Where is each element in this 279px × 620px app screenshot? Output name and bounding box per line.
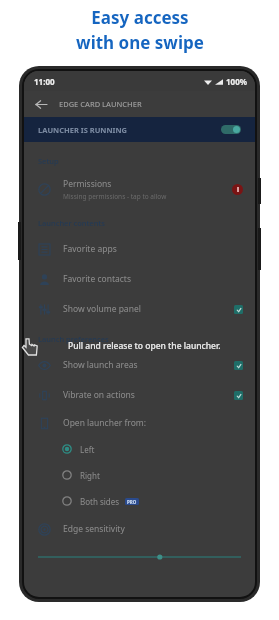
button[interactable]: Right: [24, 462, 255, 488]
staticText: Launch preferences: [38, 334, 109, 344]
button[interactable]: Both sides: [24, 488, 255, 514]
staticText: 11:00: [34, 76, 55, 87]
staticText: Permissions: [63, 178, 112, 190]
staticText: Open launcher from:: [63, 417, 147, 429]
staticText: Right: [80, 470, 100, 481]
button[interactable]: Back: [33, 96, 49, 112]
staticText: Favorite apps: [63, 243, 117, 255]
staticText: Pull and release to open the launcher.: [68, 340, 221, 352]
staticText: Setup: [38, 156, 59, 166]
button[interactable]: Show volume panel: [24, 294, 255, 324]
staticText: LAUNCHER IS RUNNING: [38, 125, 128, 135]
staticText: Edge sensitivity: [63, 523, 125, 535]
button[interactable]: Permissions: [24, 172, 255, 206]
button[interactable]: Edge sensitivity: [24, 514, 255, 544]
button[interactable]: Vibrate on actions: [24, 380, 255, 410]
staticText: Left: [80, 444, 95, 455]
staticText: Favorite contacts: [63, 273, 131, 285]
staticText: with one swipe: [76, 31, 204, 54]
staticText: Easy access: [91, 6, 189, 29]
button[interactable]: Left: [24, 436, 255, 462]
staticText: Vibrate on actions: [63, 389, 135, 401]
button[interactable]: Favorite contacts: [24, 264, 255, 294]
button[interactable]: LAUNCHER IS RUNNING: [24, 117, 255, 142]
staticText: Launcher contents: [38, 218, 105, 228]
staticText: PRO: [127, 499, 137, 505]
staticText: Missing permissions - tap to allow: [63, 192, 167, 201]
staticText: Show launch areas: [63, 359, 138, 371]
staticText: Show volume panel: [63, 303, 141, 315]
staticText: 100%: [226, 76, 247, 87]
button[interactable]: Show launch areas: [24, 350, 255, 380]
staticText: EDGE CARD LAUNCHER: [59, 99, 142, 109]
button[interactable]: Favorite apps: [24, 234, 255, 264]
staticText: Both sides: [80, 496, 120, 507]
